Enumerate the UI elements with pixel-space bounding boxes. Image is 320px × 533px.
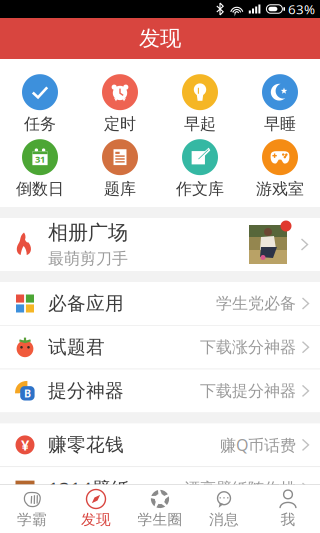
button[interactable]: 必备应用 (0, 282, 320, 325)
staticText: 63% (288, 0, 315, 18)
staticText: 1314壁纸 (48, 476, 130, 501)
staticText: 必备应用 (48, 292, 124, 315)
staticText: 试题君 (48, 336, 105, 359)
button[interactable]: 消息 (192, 485, 256, 533)
staticText: 我 (280, 510, 295, 528)
button[interactable]: 发现 (64, 485, 128, 533)
button[interactable]: 题库 (80, 141, 160, 197)
button[interactable]: 游戏室 (240, 141, 320, 197)
button[interactable]: 学霸 (0, 485, 64, 533)
staticText: 早起 (184, 114, 216, 134)
staticText: 漂亮壁纸随你挑 (184, 479, 296, 498)
staticText: 早睡 (264, 114, 296, 134)
button[interactable]: B (0, 369, 320, 412)
staticText: 赚Q币话费 (220, 434, 296, 455)
staticText: 作文库 (176, 179, 224, 199)
staticText: 题库 (104, 179, 136, 199)
staticText: 定时 (104, 114, 136, 134)
staticText: ¥ (21, 435, 29, 455)
button[interactable]: 学生圈 (128, 485, 192, 533)
staticText: 发现 (81, 510, 111, 528)
staticText: 倒数日 (16, 179, 64, 199)
button[interactable]: 作文库 (160, 141, 240, 197)
button[interactable]: 定时 (80, 76, 160, 132)
button[interactable]: 任务 (0, 76, 80, 132)
button[interactable]: 试题君 (0, 326, 320, 369)
staticText: 下载提分神器 (200, 381, 296, 401)
button[interactable]: 我 (256, 485, 320, 533)
button[interactable]: 早起 (160, 76, 240, 132)
staticText: 提分神器 (48, 379, 124, 402)
button[interactable]: 1314壁纸 (0, 467, 320, 510)
button[interactable]: 31 (0, 141, 80, 197)
staticText: 游戏室 (256, 179, 304, 199)
staticText: 最萌剪刀手 (48, 249, 128, 269)
staticText: 31 (35, 153, 45, 165)
staticText: 下载涨分神器 (200, 337, 296, 357)
button[interactable]: 早睡 (240, 76, 320, 132)
staticText: 相册广场 (48, 220, 128, 245)
staticText: 学生党必备 (216, 294, 296, 313)
staticText: 学生圈 (137, 510, 182, 528)
staticText: B (24, 386, 31, 400)
staticText: 赚零花钱 (48, 433, 124, 456)
staticText: 发现 (139, 25, 181, 52)
staticText: 任务 (24, 114, 56, 134)
staticText: 学霸 (17, 510, 47, 528)
button[interactable]: ¥ (0, 423, 320, 466)
button[interactable]: 相册广场 (0, 218, 320, 271)
staticText: 消息 (209, 510, 239, 528)
